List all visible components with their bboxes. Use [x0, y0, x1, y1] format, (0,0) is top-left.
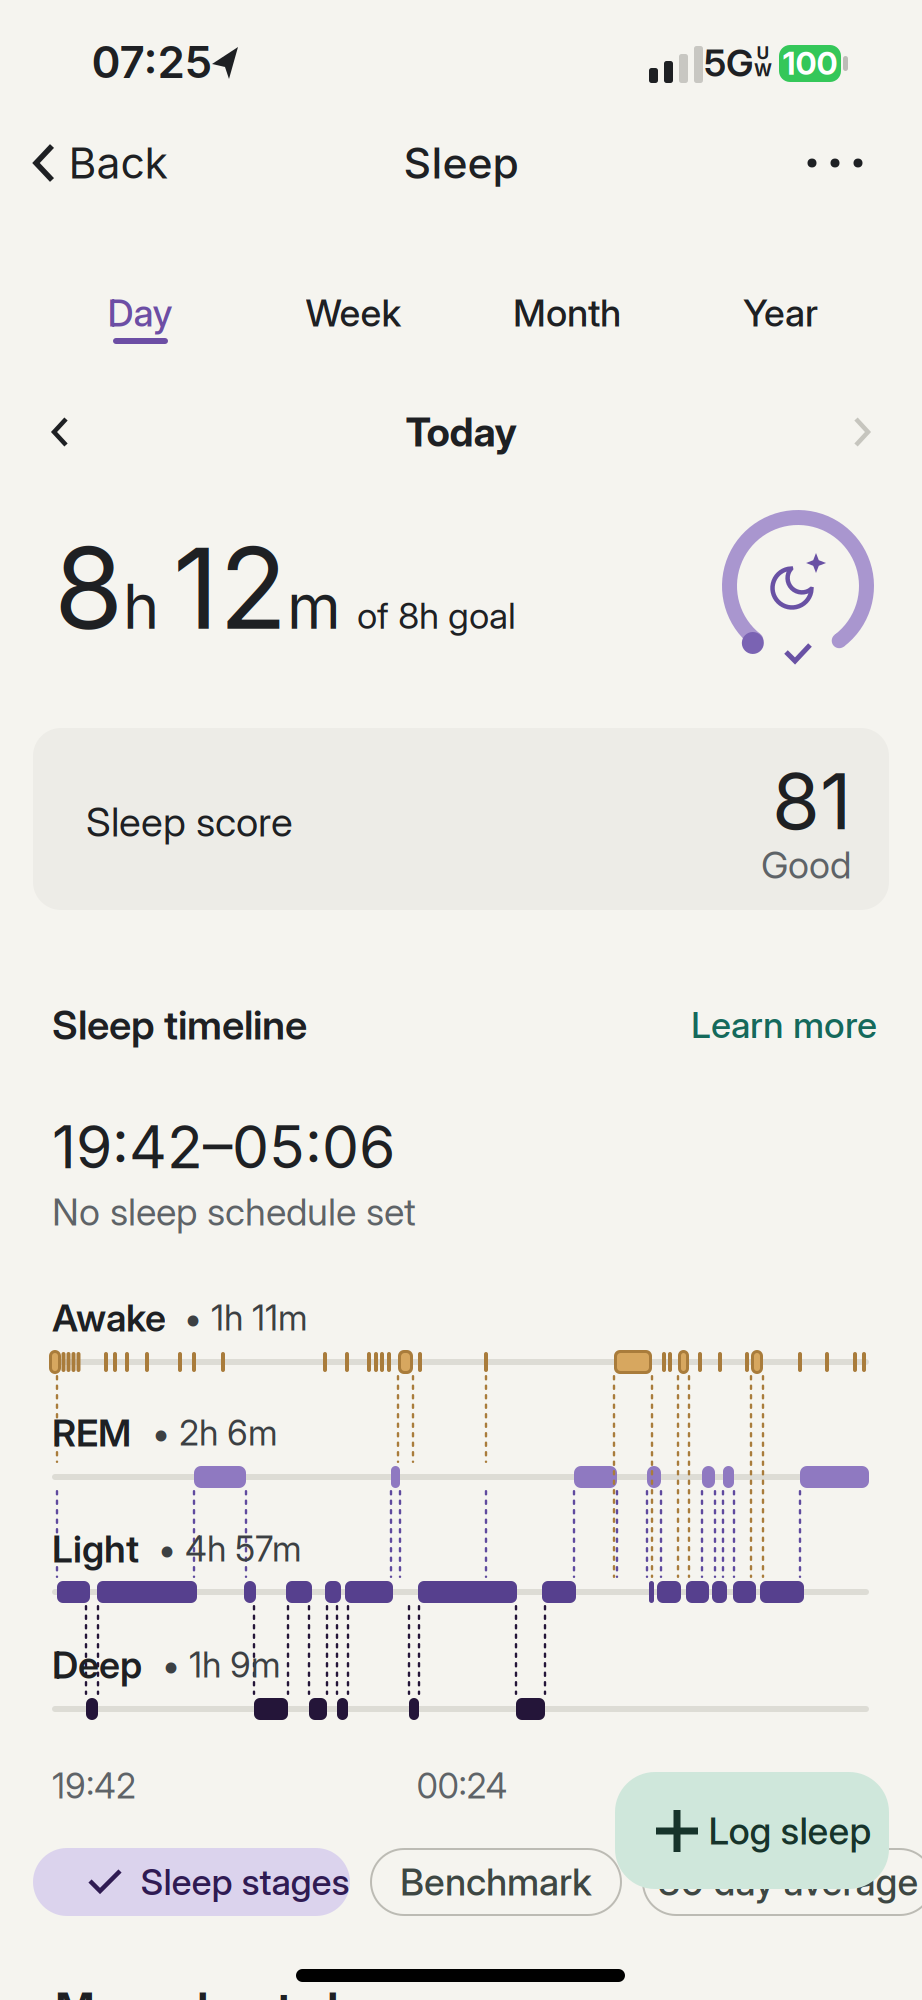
staticText: No sleep schedule set: [52, 1190, 416, 1234]
staticText: 00:24: [416, 1766, 507, 1806]
staticText: Deep: [52, 1643, 142, 1687]
staticText: 5G: [704, 41, 754, 85]
button[interactable]: [36, 411, 84, 453]
button[interactable]: Week: [247, 273, 460, 353]
staticText: Light: [52, 1527, 139, 1571]
staticText: Month: [513, 291, 621, 335]
staticText: • 2h 6m: [152, 1413, 278, 1453]
staticText: Sleep: [403, 138, 518, 188]
button[interactable]: Month: [460, 273, 673, 353]
staticText: Today: [405, 408, 516, 456]
button[interactable]: Sleep stages: [33, 1848, 350, 1916]
staticText: • 1h 11m: [184, 1298, 308, 1338]
button[interactable]: Benchmark: [370, 1848, 622, 1916]
staticText: Week: [305, 291, 401, 335]
button[interactable]: Year: [674, 273, 887, 353]
staticText: Good: [761, 843, 851, 887]
staticText: Day: [107, 291, 172, 335]
staticText: 8: [54, 522, 123, 654]
staticText: Awake: [52, 1296, 166, 1340]
button[interactable]: Sleep score: [33, 728, 889, 910]
staticText: 100: [782, 44, 837, 82]
staticText: h: [123, 570, 159, 643]
staticText: • 1h 9m: [162, 1645, 281, 1685]
staticText: REM: [52, 1411, 131, 1455]
staticText: m: [287, 570, 341, 643]
staticText: 30 day average: [657, 1860, 918, 1904]
button[interactable]: 30 day average: [642, 1848, 922, 1916]
staticText: 81: [772, 755, 851, 847]
staticText: Benchmark: [400, 1860, 592, 1904]
staticText: Log sleep: [708, 1809, 871, 1853]
staticText: U: [756, 43, 769, 63]
staticText: Learn more: [691, 1004, 877, 1046]
staticText: Year: [743, 291, 818, 335]
staticText: 19:42: [52, 1766, 136, 1806]
staticText: W: [754, 60, 772, 80]
staticText: Sleep timeline: [52, 1001, 307, 1049]
button[interactable]: Day: [33, 273, 246, 353]
staticText: Sleep stages: [140, 1861, 349, 1903]
staticText: of 8h goal: [357, 594, 516, 637]
staticText: 07:25: [91, 36, 212, 88]
staticText: Back: [68, 138, 167, 188]
button[interactable]: Learn more: [691, 1004, 877, 1046]
staticText: 12: [173, 522, 287, 654]
button[interactable]: Back: [30, 128, 220, 198]
staticText: 19:42–05:06: [52, 1112, 395, 1182]
button[interactable]: Log sleep: [615, 1772, 889, 1889]
button[interactable]: [838, 411, 886, 453]
button[interactable]: [791, 138, 881, 188]
staticText: • 4h 57m: [158, 1529, 302, 1569]
staticText: Sleep score: [86, 798, 293, 846]
staticText: More about sleep: [55, 1983, 416, 2000]
